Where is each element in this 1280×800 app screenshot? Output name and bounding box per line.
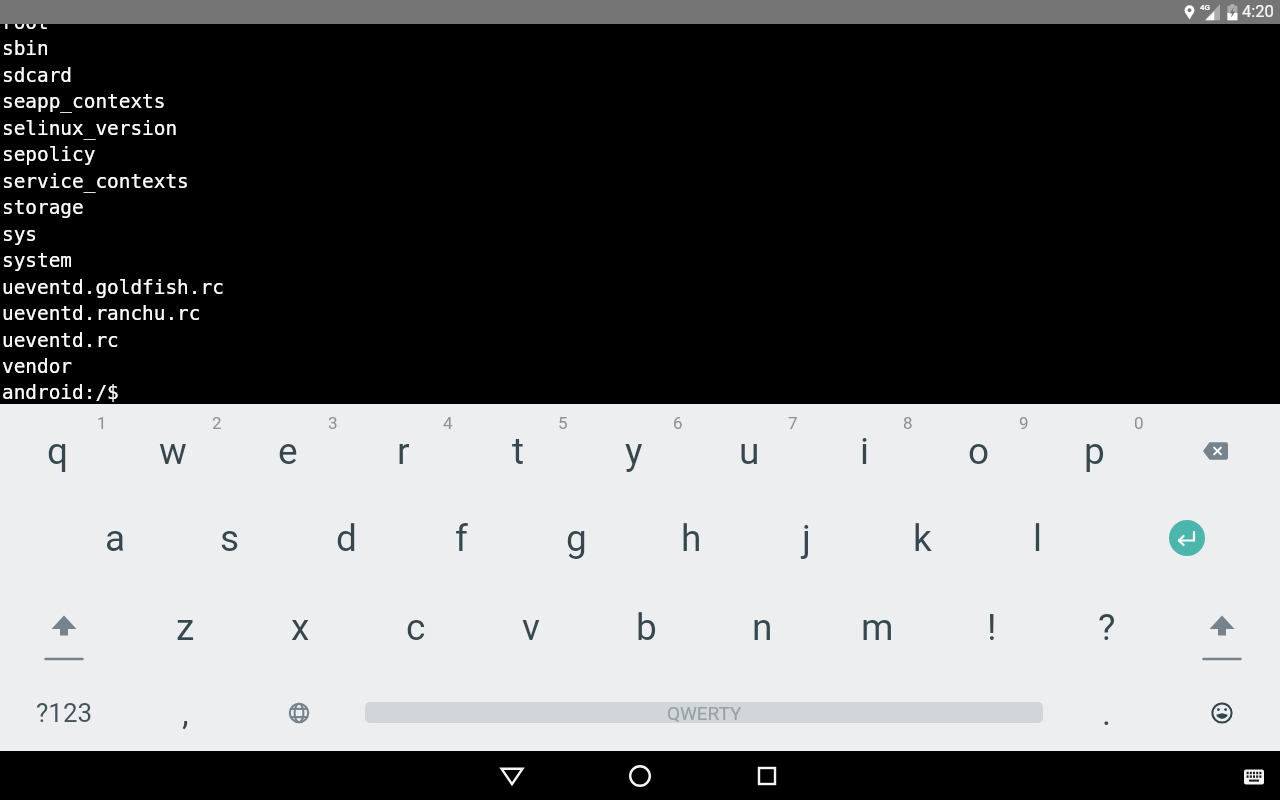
staticText: sys: [2, 223, 38, 246]
button[interactable]: i: [807, 408, 921, 494]
button[interactable]: l: [980, 495, 1094, 581]
button[interactable]: h: [634, 495, 748, 581]
button[interactable]: !: [935, 584, 1049, 670]
staticText: z: [176, 606, 195, 649]
staticText: ?: [1098, 606, 1116, 649]
button[interactable]: w: [116, 408, 230, 494]
button[interactable]: e: [231, 408, 345, 494]
staticText: i: [860, 430, 869, 473]
staticText: android:/$: [2, 381, 119, 404]
staticText: u: [739, 430, 760, 473]
staticText: 2: [212, 413, 222, 433]
button[interactable]: n: [705, 584, 819, 670]
staticText: sdcard: [2, 64, 73, 87]
staticText: s: [220, 517, 240, 560]
button[interactable]: [249, 673, 349, 753]
staticText: 3: [328, 413, 338, 433]
staticText: 8: [903, 413, 913, 433]
button[interactable]: d: [289, 495, 403, 581]
staticText: 7: [788, 413, 798, 433]
button[interactable]: r: [346, 408, 460, 494]
staticText: root: [2, 11, 49, 34]
staticText: .: [1102, 693, 1111, 733]
staticText: selinux_version: [2, 117, 178, 140]
button[interactable]: k: [865, 495, 979, 581]
staticText: 4: [443, 413, 453, 433]
staticText: p: [1084, 430, 1105, 473]
staticText: storage: [2, 196, 84, 219]
staticText: j: [802, 517, 811, 560]
button[interactable]: b: [589, 584, 703, 670]
staticText: vendor: [2, 355, 73, 378]
button[interactable]: c: [359, 584, 473, 670]
staticText: t: [512, 430, 525, 473]
staticText: 4G: [1200, 3, 1210, 12]
staticText: 5: [558, 413, 568, 433]
staticText: v: [522, 606, 540, 649]
staticText: 9: [1019, 413, 1029, 433]
button[interactable]: [1158, 408, 1272, 494]
button[interactable]: a: [58, 495, 172, 581]
staticText: QWERTY: [667, 702, 742, 723]
staticText: w: [159, 430, 187, 473]
button[interactable]: m: [820, 584, 934, 670]
button[interactable]: [1230, 752, 1278, 800]
staticText: 6: [673, 413, 683, 433]
button[interactable]: ?: [1050, 584, 1164, 670]
staticText: b: [636, 606, 657, 649]
staticText: ,: [182, 693, 189, 733]
button[interactable]: q: [1, 408, 115, 494]
staticText: h: [681, 517, 702, 560]
staticText: c: [406, 606, 426, 649]
staticText: q: [47, 430, 69, 473]
staticText: d: [336, 517, 357, 560]
staticText: ?123: [36, 698, 93, 728]
staticText: r: [397, 430, 410, 473]
button[interactable]: ,: [135, 673, 235, 753]
button[interactable]: g: [519, 495, 633, 581]
staticText: o: [968, 430, 990, 473]
staticText: a: [105, 517, 126, 560]
button[interactable]: s: [173, 495, 287, 581]
staticText: g: [566, 517, 587, 560]
staticText: sbin: [2, 37, 49, 60]
button[interactable]: [1130, 495, 1244, 581]
button[interactable]: p: [1037, 408, 1151, 494]
staticText: y: [625, 430, 643, 473]
button[interactable]: f: [404, 495, 518, 581]
button[interactable]: j: [749, 495, 863, 581]
button[interactable]: [1172, 673, 1272, 753]
staticText: service_contexts: [2, 170, 189, 193]
button[interactable]: v: [474, 584, 588, 670]
staticText: m: [861, 606, 894, 649]
staticText: x: [291, 606, 310, 649]
staticText: system: [2, 249, 73, 272]
staticText: 1: [97, 413, 107, 433]
button[interactable]: .: [1056, 673, 1156, 753]
staticText: l: [1033, 517, 1042, 560]
staticText: ueventd.goldfish.rc: [2, 276, 224, 299]
staticText: 0: [1134, 413, 1144, 433]
button[interactable]: t: [461, 408, 575, 494]
staticText: n: [752, 606, 773, 649]
staticText: e: [278, 430, 298, 473]
button[interactable]: x: [243, 584, 357, 670]
staticText: f: [455, 517, 468, 560]
button[interactable]: o: [922, 408, 1036, 494]
button[interactable]: [1165, 584, 1279, 670]
button[interactable]: [7, 584, 121, 670]
button[interactable]: y: [577, 408, 691, 494]
staticText: 4:20: [1242, 2, 1274, 21]
button[interactable]: ?123: [7, 673, 121, 753]
button[interactable]: [472, 751, 552, 800]
staticText: sepolicy: [2, 143, 96, 166]
button[interactable]: [727, 751, 807, 800]
staticText: ueventd.rc: [2, 329, 119, 352]
button[interactable]: [600, 751, 680, 800]
button[interactable]: u: [692, 408, 806, 494]
staticText: !: [987, 606, 997, 649]
staticText: k: [913, 517, 932, 560]
button[interactable]: z: [128, 584, 242, 670]
button[interactable]: QWERTY: [365, 702, 1043, 723]
staticText: seapp_contexts: [2, 90, 166, 113]
